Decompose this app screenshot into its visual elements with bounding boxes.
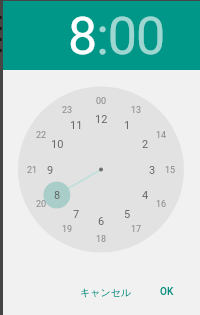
button[interactable]: 11 <box>62 115 90 135</box>
staticText: 8:00 <box>68 6 165 67</box>
staticText: 10 <box>51 138 64 151</box>
button[interactable]: 23 <box>53 100 81 120</box>
button[interactable]: 4 <box>131 185 159 205</box>
button[interactable]: 5 <box>113 204 141 224</box>
staticText: 17 <box>131 224 142 235</box>
button[interactable]: 2 <box>131 134 159 154</box>
staticText: 8 <box>54 189 61 202</box>
button[interactable]: 19 <box>53 219 81 239</box>
button[interactable]: OK <box>152 282 182 302</box>
button[interactable]: 3 <box>138 160 166 180</box>
staticText: キャンセル <box>80 286 132 299</box>
button[interactable]: 18 <box>87 229 115 249</box>
button[interactable]: 1 <box>113 115 141 135</box>
staticText: 4 <box>142 189 149 202</box>
button[interactable] <box>0 0 200 315</box>
button[interactable]: 22 <box>27 125 55 145</box>
staticText: 11 <box>70 119 83 132</box>
button[interactable]: 15 <box>156 160 184 180</box>
button[interactable]: 00 <box>87 91 115 111</box>
button[interactable]: 14 <box>147 125 175 145</box>
button[interactable]: 21 <box>18 160 46 180</box>
staticText: 19 <box>62 224 73 235</box>
button[interactable]: 9 <box>36 160 64 180</box>
staticText: 14 <box>156 130 167 141</box>
button[interactable]: 6 <box>87 211 115 231</box>
staticText: 21 <box>27 165 38 176</box>
staticText: 12 <box>95 113 108 126</box>
button[interactable]: 12 <box>87 109 115 129</box>
staticText: 6 <box>98 215 105 228</box>
staticText: 2 <box>142 138 149 151</box>
button[interactable]: 8:00 <box>68 6 165 67</box>
button[interactable]: 13 <box>122 100 150 120</box>
button[interactable]: 16 <box>147 194 175 214</box>
staticText: 00 <box>96 96 107 107</box>
button[interactable]: キャンセル <box>76 282 136 302</box>
staticText: 22 <box>36 130 47 141</box>
button[interactable]: 10 <box>43 134 71 154</box>
staticText: 9 <box>47 164 54 177</box>
button[interactable]: 20 <box>27 194 55 214</box>
staticText: 13 <box>131 105 142 116</box>
staticText: 7 <box>73 208 80 221</box>
staticText: 20 <box>36 199 47 210</box>
staticText: 3 <box>149 164 156 177</box>
staticText: 5 <box>124 208 131 221</box>
staticText: 15 <box>165 165 176 176</box>
button[interactable]: 8 <box>43 185 71 205</box>
button[interactable]: 7 <box>62 204 90 224</box>
button[interactable]: 17 <box>122 219 150 239</box>
staticText: 16 <box>156 199 167 210</box>
staticText: 18 <box>96 234 107 245</box>
staticText: OK <box>160 286 174 298</box>
staticText: 1 <box>124 119 131 132</box>
staticText: 23 <box>62 105 73 116</box>
